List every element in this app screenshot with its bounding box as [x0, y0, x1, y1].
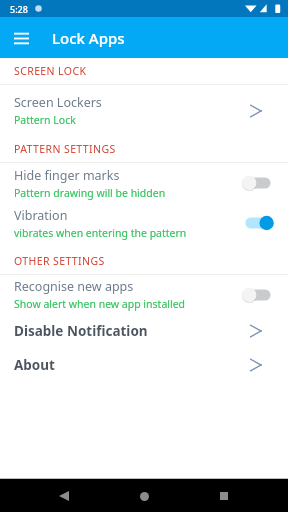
staticText: vibrates when entering the pattern [14, 226, 187, 240]
button[interactable]: Recognise new apps [0, 275, 288, 314]
staticText: Show alert when new app installed [14, 297, 186, 311]
staticText: PATTERN SETTINGS [14, 142, 116, 156]
staticText: Pattern Lock [14, 113, 76, 127]
button[interactable]: About [241, 348, 275, 382]
button[interactable]: Open screen lockers [241, 94, 275, 128]
button[interactable]: Recent apps [210, 482, 238, 510]
button[interactable]: Disable notification [241, 314, 275, 348]
button[interactable]: Home [130, 482, 158, 510]
button[interactable]: Vibration toggle, on [235, 208, 281, 238]
button[interactable]: Hide finger marks [0, 163, 288, 203]
staticText: Lock Apps [52, 28, 125, 48]
staticText: SCREEN LOCK [14, 64, 87, 78]
staticText: Hide finger marks [14, 167, 120, 184]
staticText: 5:28 [10, 3, 28, 15]
button[interactable]: Disable Notification [0, 314, 288, 348]
staticText: OTHER SETTINGS [14, 254, 105, 268]
button[interactable]: About [0, 348, 288, 382]
staticText: Disable Notification [14, 322, 148, 340]
staticText: Screen Lockers [14, 94, 102, 111]
staticText: Vibration [14, 207, 68, 224]
button[interactable]: Screen Lockers [0, 85, 288, 136]
button[interactable]: Back [50, 482, 78, 510]
staticText: Pattern drawing will be hidden [14, 186, 166, 200]
staticText: Recognise new apps [14, 278, 134, 295]
button[interactable]: Recognise new apps toggle, off [235, 280, 281, 310]
button[interactable]: Hide finger marks toggle, off [235, 168, 281, 198]
button[interactable]: Vibration [0, 203, 288, 243]
staticText: About [14, 356, 55, 374]
button[interactable]: Open navigation menu [7, 24, 35, 52]
